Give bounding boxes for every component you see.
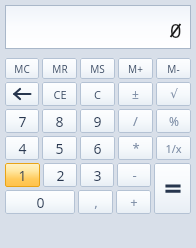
staticText: 0 [36,193,45,212]
button[interactable]: 8 [42,109,77,133]
staticText: MS [90,62,105,76]
staticText: 6 [93,139,102,158]
button[interactable]: MR [42,58,77,79]
button[interactable]: M- [156,58,191,79]
staticText: C [94,87,101,102]
staticText: + [130,193,138,211]
staticText: M- [167,62,180,76]
button[interactable]: 1 [5,163,40,187]
button[interactable]: / [118,109,153,133]
staticText: MR [52,62,68,76]
staticText: 4 [18,139,27,158]
button[interactable]: Backspace [5,82,39,106]
button[interactable]: 1/x [156,136,191,160]
button[interactable]: 0 [5,190,75,214]
button[interactable]: 7 [5,109,39,133]
staticText: ± [132,86,139,102]
staticText: 7 [18,112,27,131]
staticText: 8 [55,112,64,131]
staticText: 5 [55,139,64,158]
staticText: √ [170,87,178,101]
button[interactable]: * [118,136,153,160]
staticText: / [133,112,138,130]
button[interactable]: 4 [5,136,39,160]
staticText: , [94,193,98,211]
button[interactable]: M+ [118,58,153,79]
button[interactable]: Equals [154,163,191,214]
staticText: 2 [56,166,65,185]
staticText: 1 [18,166,27,185]
button[interactable]: 3 [80,163,114,187]
button[interactable]: √ [156,82,191,106]
staticText: * [132,139,140,157]
button[interactable]: C [80,82,115,106]
button[interactable]: ± [118,82,153,106]
button[interactable]: % [156,109,191,133]
staticText: 9 [93,112,102,131]
button[interactable]: MS [80,58,115,79]
button[interactable]: MC [5,58,39,79]
staticText: % [169,113,179,129]
button[interactable]: CE [42,82,77,106]
button[interactable]: - [117,163,151,187]
staticText: 0 [170,17,182,44]
staticText: 1/x [165,141,182,156]
staticText: M+ [128,62,143,76]
button[interactable]: 6 [80,136,115,160]
button[interactable]: 9 [80,109,115,133]
button[interactable]: 2 [43,163,77,187]
button[interactable]: , [78,190,113,214]
staticText: 3 [93,166,102,185]
button[interactable]: + [116,190,151,214]
staticText: MC [14,62,30,76]
button[interactable]: 5 [42,136,77,160]
staticText: CE [53,87,67,102]
staticText: - [132,166,137,184]
